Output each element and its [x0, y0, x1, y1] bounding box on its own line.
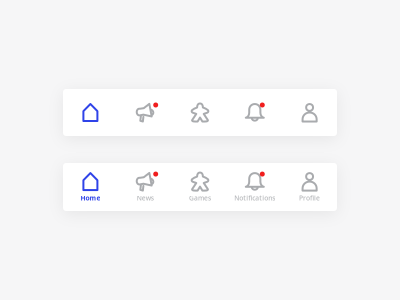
- button[interactable]: [173, 102, 227, 122]
- staticText: Profile: [299, 194, 320, 202]
- staticText: Notifications: [234, 194, 275, 202]
- button[interactable]: Profile: [282, 172, 337, 202]
- staticText: News: [137, 194, 154, 202]
- button[interactable]: [118, 102, 173, 122]
- button[interactable]: News: [118, 172, 173, 202]
- button[interactable]: Home: [63, 172, 118, 202]
- button[interactable]: [227, 102, 282, 122]
- button[interactable]: Games: [173, 172, 227, 202]
- button[interactable]: Notifications: [227, 172, 282, 202]
- staticText: Games: [189, 194, 211, 202]
- button[interactable]: [282, 102, 337, 122]
- button[interactable]: [63, 102, 118, 122]
- staticText: Home: [80, 194, 100, 202]
